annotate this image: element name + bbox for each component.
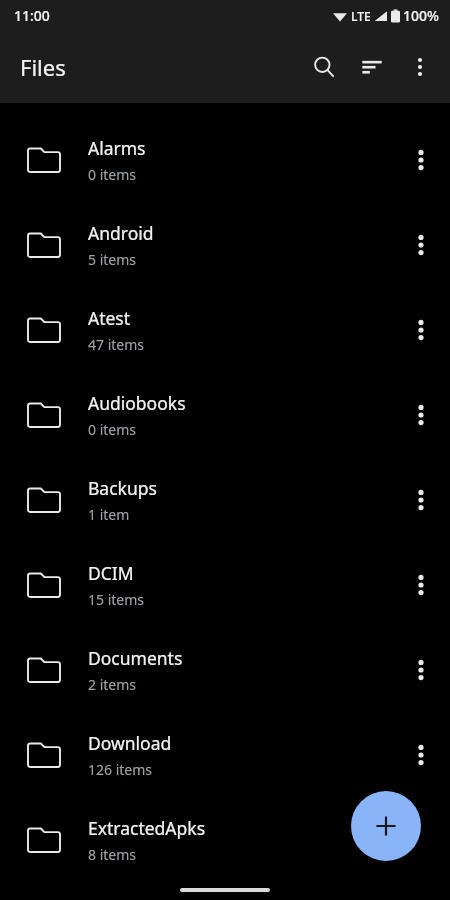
button[interactable]: Android [0, 202, 450, 287]
button[interactable]: Atest [0, 287, 450, 372]
staticText: Audiobooks [88, 391, 186, 415]
button[interactable]: Download [0, 712, 450, 797]
staticText: DCIM [88, 561, 134, 585]
staticText: 47 items [88, 335, 145, 354]
staticText: 15 items [88, 590, 145, 609]
button[interactable]: More options for DCIM [392, 542, 450, 627]
staticText: 11:00 [14, 6, 50, 25]
staticText: Atest [88, 306, 131, 330]
button[interactable]: Sort [348, 43, 396, 91]
button[interactable]: More options for Download [392, 712, 450, 797]
staticText: 8 items [88, 845, 137, 864]
staticText: Android [88, 221, 154, 245]
staticText: 5 items [88, 250, 137, 269]
staticText: 2 items [88, 675, 137, 694]
button[interactable]: More options for Audiobooks [392, 372, 450, 457]
button[interactable]: More options for Documents [392, 627, 450, 712]
button[interactable]: ExtractedApks [0, 797, 450, 882]
button[interactable]: Alarms [0, 117, 450, 202]
staticText: ExtractedApks [88, 816, 206, 840]
button[interactable]: More options for Atest [392, 287, 450, 372]
button[interactable]: Backups [0, 457, 450, 542]
staticText: Alarms [88, 136, 146, 160]
button[interactable]: Create new [351, 791, 421, 861]
staticText: LTE [351, 8, 371, 24]
button[interactable]: More options [396, 43, 444, 91]
staticText: 0 items [88, 165, 137, 184]
staticText: 1 item [88, 505, 130, 524]
staticText: 100% [403, 6, 439, 25]
staticText: 0 items [88, 420, 137, 439]
button[interactable]: Audiobooks [0, 372, 450, 457]
staticText: Files [20, 52, 66, 82]
button[interactable]: DCIM [0, 542, 450, 627]
button[interactable]: Documents [0, 627, 450, 712]
button[interactable]: More options for Alarms [392, 117, 450, 202]
staticText: Download [88, 731, 172, 755]
staticText: Backups [88, 476, 157, 500]
button[interactable]: Search [300, 43, 348, 91]
button[interactable]: More options for Backups [392, 457, 450, 542]
staticText: 126 items [88, 760, 153, 779]
staticText: Documents [88, 646, 183, 670]
button[interactable]: More options for Android [392, 202, 450, 287]
